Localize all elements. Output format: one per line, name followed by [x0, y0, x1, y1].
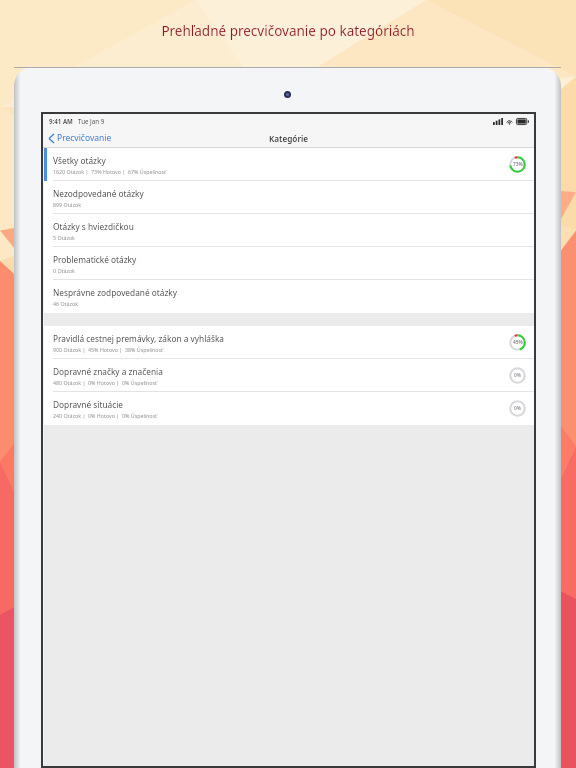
staticText: 45%: [513, 339, 523, 346]
staticText: 0%: [514, 405, 521, 412]
staticText: Problematické otázky: [53, 254, 137, 265]
staticText: 240 Otázok | 0% Hotovo | 0% Úspešnosť: [53, 412, 157, 419]
staticText: Prehľadné precvičovanie po kategóriách: [161, 22, 415, 40]
staticText: 0 Otázok: [53, 267, 75, 274]
other: Progress 0%: [508, 366, 527, 385]
staticText: Všetky otázky: [53, 155, 106, 166]
button[interactable]: Nesprávne zodpovedané otázky: [44, 280, 534, 313]
staticText: 73%: [513, 161, 523, 168]
staticText: 9:41 AM: [49, 117, 73, 125]
staticText: 46 Otázok: [53, 300, 78, 307]
staticText: 5 Otázok: [53, 234, 75, 241]
other: Progress 73%: [508, 155, 527, 174]
button[interactable]: Problematické otázky: [44, 247, 534, 280]
staticText: Tue Jan 9: [78, 117, 105, 125]
staticText: Dopravné situácie: [53, 399, 123, 410]
staticText: Pravidlá cestnej premávky, zákon a vyhlá…: [53, 333, 224, 344]
staticText: Kategórie: [269, 133, 309, 144]
staticText: 900 Otázok | 45% Hotovo | 38% Úspešnosť: [53, 346, 163, 353]
button[interactable]: Všetky otázky: [44, 148, 534, 181]
staticText: Dopravné značky a značenia: [53, 366, 163, 377]
button[interactable]: Otázky s hviezdičkou: [44, 214, 534, 247]
other: Progress 0%: [508, 399, 527, 418]
staticText: Otázky s hviezdičkou: [53, 221, 134, 232]
staticText: 899 Otázok: [53, 201, 82, 208]
staticText: Precvičovanie: [57, 132, 112, 144]
staticText: 480 Otázok | 0% Hotovo | 0% Úspešnosť: [53, 379, 157, 386]
button[interactable]: Nezodpovedané otázky: [44, 181, 534, 214]
staticText: Nezodpovedané otázky: [53, 188, 144, 199]
button[interactable]: Dopravné situácie: [44, 392, 534, 425]
button[interactable]: Precvičovanie: [47, 130, 114, 146]
button[interactable]: Dopravné značky a značenia: [44, 359, 534, 392]
other: Progress 45%: [508, 333, 527, 352]
staticText: 1620 Otázok | 73% Hotovo | 67% Úspešnosť: [53, 168, 166, 175]
button[interactable]: Pravidlá cestnej premávky, zákon a vyhlá…: [44, 326, 534, 359]
staticText: 0%: [514, 372, 521, 379]
staticText: Nesprávne zodpovedané otázky: [53, 287, 177, 298]
